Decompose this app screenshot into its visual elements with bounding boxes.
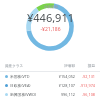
button[interactable]: 新興国株(VWO) (0, 90, 100, 99)
staticText: 米国株(VTI) (10, 74, 51, 79)
staticText: 日欧株(VEA) (10, 83, 51, 88)
staticText: ¥446,911 (27, 10, 74, 25)
staticText: ¥128,107 (51, 83, 75, 88)
staticText: 資産クラス (5, 64, 51, 69)
staticText: ¥154,052 (51, 74, 75, 79)
button[interactable]: 日欧株(VEA) (0, 81, 100, 90)
staticText: -¥21,186 (40, 26, 61, 33)
staticText: 総資産額 (44, 5, 58, 9)
staticText: 評価額 (51, 64, 75, 69)
staticText: ¥96,112 (51, 92, 75, 97)
button[interactable]: 米国株(VTI) (0, 72, 100, 81)
staticText: -¥6,108 (75, 92, 95, 97)
staticText: -¥2,131 (75, 74, 95, 79)
staticText: 損益 (75, 64, 95, 69)
staticText: 新興国株(VWO) (10, 92, 51, 97)
staticText: -¥13,974 (75, 83, 95, 88)
